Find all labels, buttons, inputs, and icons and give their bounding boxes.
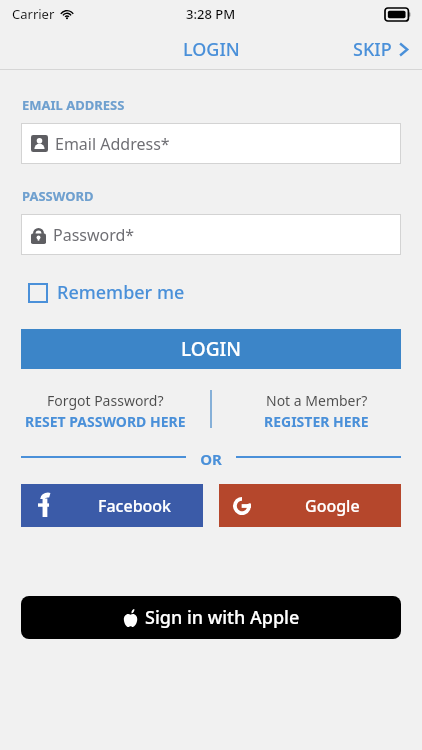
staticText: LOGIN: [183, 37, 240, 62]
staticText: REGISTER HERE: [264, 412, 369, 431]
staticText: Facebook: [98, 495, 172, 517]
staticText: Not a Member?: [266, 391, 368, 410]
button[interactable]: Not a Member?: [211, 389, 422, 433]
staticText: Forgot Password?: [47, 391, 164, 410]
staticText: LOGIN: [181, 336, 241, 362]
button[interactable]: Sign in with Apple: [21, 596, 401, 639]
staticText: Email Address*: [55, 133, 170, 155]
button[interactable]: Remember me: [28, 277, 195, 308]
button[interactable]: Google: [219, 484, 401, 527]
staticText: 3:28 PM: [186, 5, 236, 23]
staticText: Sign in with Apple: [145, 605, 300, 630]
button[interactable]: Forgot Password?: [0, 389, 211, 433]
button[interactable]: SKIP: [341, 33, 422, 66]
staticText: Password*: [53, 224, 135, 246]
staticText: EMAIL ADDRESS: [22, 96, 125, 114]
button[interactable]: Email Address*: [21, 123, 401, 164]
staticText: RESET PASSWORD HERE: [25, 412, 186, 431]
staticText: OR: [200, 449, 222, 465]
staticText: PASSWORD: [22, 187, 94, 205]
button[interactable]: Password*: [21, 214, 401, 255]
staticText: SKIP: [353, 37, 392, 62]
button[interactable]: LOGIN: [21, 329, 401, 369]
staticText: Remember me: [57, 280, 185, 305]
staticText: Carrier: [12, 5, 55, 23]
button[interactable]: LOGIN: [173, 33, 250, 66]
button[interactable]: Facebook: [21, 484, 203, 527]
staticText: Google: [305, 495, 360, 517]
